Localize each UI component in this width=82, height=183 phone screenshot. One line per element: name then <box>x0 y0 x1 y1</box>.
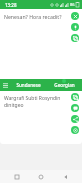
staticText: Georgian <box>54 82 75 88</box>
button[interactable]: Georgian <box>46 79 82 91</box>
staticText: Sundanese <box>16 82 41 88</box>
button[interactable]: Share <box>71 115 79 123</box>
staticText: 13:28 <box>5 2 17 8</box>
staticText: 86 <box>70 2 75 7</box>
staticText: Wargrafi Subti Rosyndin dinitgeo <box>4 95 61 109</box>
button[interactable]: Copy <box>71 34 79 42</box>
button[interactable]: Favorite <box>71 126 79 134</box>
button[interactable]: Menu <box>0 79 11 91</box>
button[interactable]: Sundanese <box>11 79 46 91</box>
button[interactable]: Back <box>58 170 74 183</box>
button[interactable]: Clear <box>71 12 79 20</box>
button[interactable]: Copy translation <box>71 93 79 101</box>
staticText: Nenesan? Hora recadit? <box>4 13 62 20</box>
button[interactable]: Recents <box>9 170 25 183</box>
button[interactable]: Microphone <box>71 23 79 31</box>
button[interactable]: Home <box>33 170 49 183</box>
button[interactable]: Speak <box>71 104 79 112</box>
